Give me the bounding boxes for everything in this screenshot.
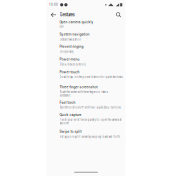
staticText: Power menu <box>59 57 79 61</box>
staticText: Show device controls <box>59 63 85 66</box>
button[interactable]: Power menu <box>46 57 125 70</box>
button[interactable]: Fast torch <box>46 100 125 113</box>
button[interactable]: Quick capture <box>46 113 125 130</box>
button[interactable]: Three-finger screenshot <box>46 85 125 100</box>
staticText: Three-finger screenshot <box>59 85 97 89</box>
staticText: 10:00 <box>49 3 58 6</box>
staticText: Fast torch <box>59 100 75 104</box>
staticText: Gesture navigation <box>59 38 80 41</box>
button[interactable]: Prevent ringing <box>46 45 125 57</box>
button[interactable]: System navigation <box>46 32 125 45</box>
staticText: Quick capture <box>59 113 81 117</box>
staticText: Twist your wrist twice quickly to open t… <box>59 118 121 121</box>
staticText: Turn the torch on/off with two quick cho… <box>59 106 120 109</box>
staticText: On (vibrate) <box>59 50 73 53</box>
staticText: Touch the screen with three fingers to t… <box>59 90 107 94</box>
staticText: System navigation <box>59 32 89 36</box>
staticText: Off <box>59 26 63 29</box>
staticText: Gestures <box>59 12 74 17</box>
button[interactable]: Open camera quickly <box>46 20 125 32</box>
staticText: Power touch <box>59 70 79 74</box>
staticText: screenshot <box>59 94 70 97</box>
staticText: Swipe to split <box>59 130 81 134</box>
staticText: Set apps in split screen by swiping back… <box>59 135 119 138</box>
button[interactable]: Swipe to split <box>46 130 125 144</box>
staticText: Double tap on the power button for quick… <box>59 76 122 79</box>
button[interactable]: Power touch <box>46 70 125 85</box>
staticText: Open camera quickly <box>59 20 93 24</box>
staticText: Prevent ringing <box>59 45 83 49</box>
button[interactable]: Search <box>114 11 123 19</box>
button[interactable]: Back <box>49 11 58 19</box>
staticText: any time <box>59 122 68 125</box>
